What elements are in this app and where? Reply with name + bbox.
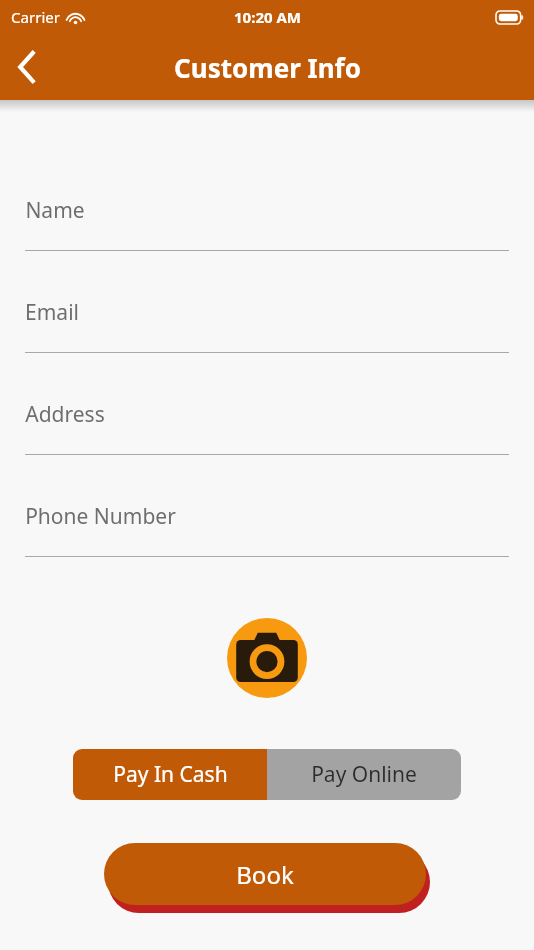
button[interactable]: Add photo: [227, 618, 307, 698]
button[interactable]: Address: [0, 384, 534, 486]
button[interactable]: Pay Online: [267, 749, 461, 800]
staticText: Pay Online: [311, 760, 417, 789]
button[interactable]: Name: [0, 180, 534, 282]
button[interactable]: Book: [104, 843, 430, 913]
staticText: Customer Info: [174, 50, 361, 85]
button[interactable]: Phone Number: [0, 486, 534, 588]
staticText: 10:20 AM: [234, 7, 301, 27]
staticText: Email: [25, 298, 79, 327]
staticText: Name: [25, 196, 85, 225]
staticText: Pay In Cash: [113, 760, 228, 789]
button[interactable]: Email: [0, 282, 534, 384]
staticText: Phone Number: [25, 502, 176, 531]
button[interactable]: Back: [0, 40, 54, 94]
staticText: Book: [236, 858, 294, 891]
button[interactable]: Pay In Cash: [73, 749, 267, 800]
staticText: Carrier: [11, 7, 60, 27]
staticText: Address: [25, 400, 105, 429]
